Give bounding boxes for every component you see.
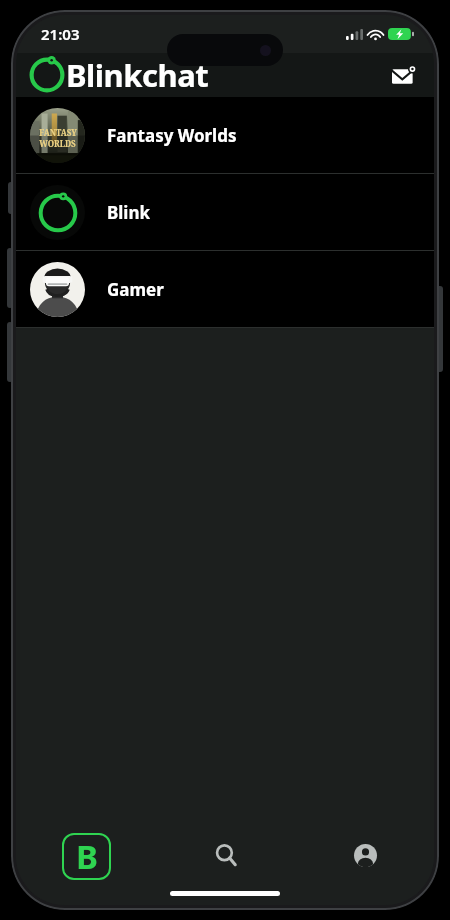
button[interactable]: Blinkchat bbox=[60, 831, 112, 881]
staticText: Gamer bbox=[107, 278, 164, 301]
button[interactable]: Search bbox=[202, 831, 250, 879]
staticText: WORLDS bbox=[39, 138, 76, 149]
button[interactable]: Messages bbox=[382, 53, 426, 97]
staticText: Fantasy Worlds bbox=[107, 124, 237, 147]
staticText: B bbox=[76, 834, 98, 879]
staticText: Blink bbox=[107, 201, 151, 224]
staticText: FANTASY bbox=[39, 127, 77, 138]
staticText: Blinkchat bbox=[66, 54, 209, 96]
button[interactable]: Gamer bbox=[16, 251, 434, 327]
button[interactable]: FANTASY bbox=[16, 97, 434, 173]
button[interactable]: Profile bbox=[341, 831, 389, 879]
button[interactable]: Blink bbox=[16, 174, 434, 250]
staticText: 21:03 bbox=[41, 24, 80, 44]
